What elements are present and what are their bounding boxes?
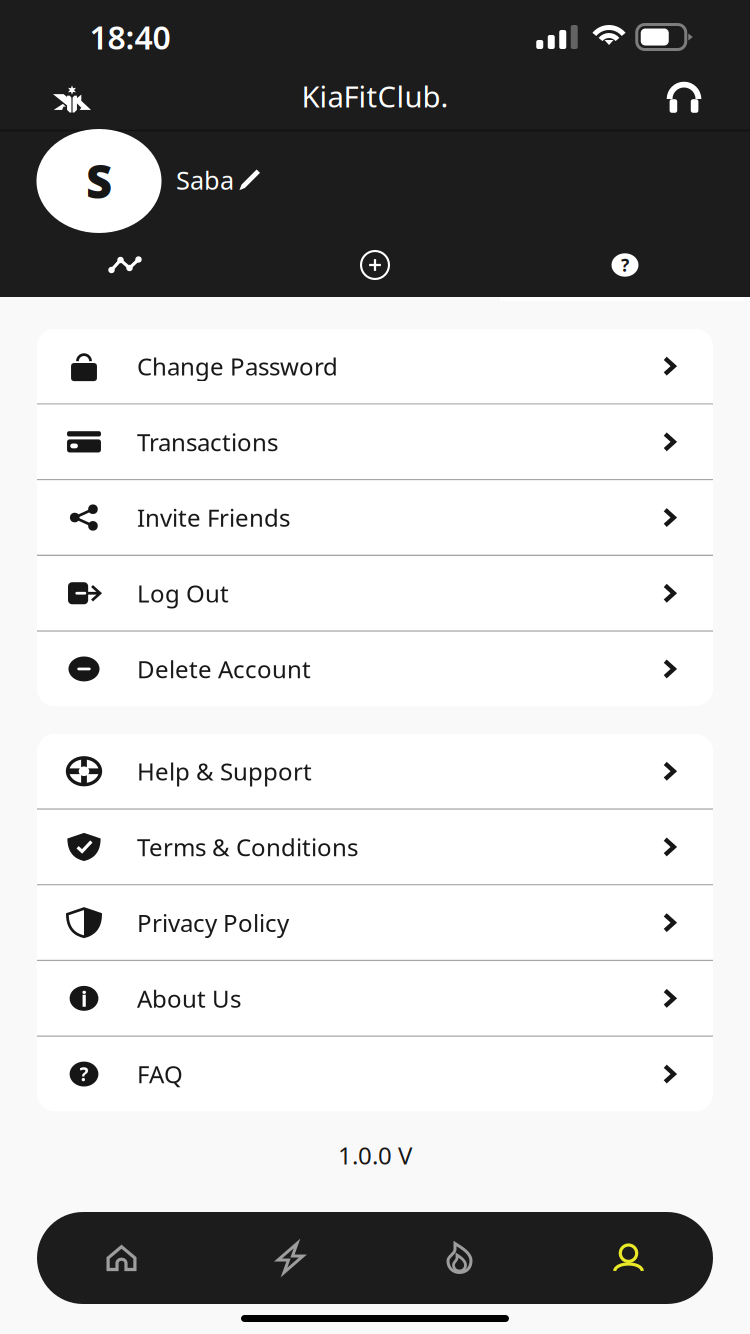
staticText: Delete Account <box>137 653 311 685</box>
staticText: Terms & Conditions <box>137 831 358 863</box>
button[interactable]: ? <box>37 1037 713 1111</box>
staticText: FAQ <box>137 1058 183 1090</box>
button[interactable]: Stats <box>0 235 250 299</box>
button[interactable]: Invite Friends <box>37 480 713 555</box>
button[interactable]: Home <box>37 1212 206 1304</box>
staticText: ? <box>79 1062 88 1086</box>
staticText: KiaFitClub. <box>301 76 448 115</box>
button[interactable]: Delete Account <box>37 632 713 706</box>
staticText: 18:40 <box>89 16 170 58</box>
button[interactable]: Transactions <box>37 405 713 479</box>
button[interactable]: Help & Support <box>37 734 713 808</box>
button[interactable]: i <box>37 961 713 1035</box>
staticText: Log Out <box>137 577 229 609</box>
staticText: ? <box>621 253 629 276</box>
staticText: About Us <box>137 982 241 1014</box>
button[interactable]: Workouts <box>206 1212 375 1304</box>
staticText: Saba <box>176 163 234 197</box>
button[interactable]: Log Out <box>37 556 713 630</box>
button[interactable]: Saba <box>172 153 264 207</box>
staticText: Privacy Policy <box>137 907 289 939</box>
staticText: Invite Friends <box>137 502 290 533</box>
button[interactable]: Help <box>500 235 750 299</box>
button[interactable]: Terms & Conditions <box>37 810 713 884</box>
button[interactable]: Privacy Policy <box>37 885 713 960</box>
button[interactable]: KiaFitClub <box>41 73 103 125</box>
staticText: Transactions <box>137 426 278 458</box>
button[interactable]: Add <box>250 235 500 299</box>
staticText: S <box>86 151 112 211</box>
button[interactable]: Calories <box>375 1212 544 1304</box>
staticText: 1.0.0 V <box>338 1139 412 1171</box>
staticText: Help & Support <box>137 755 312 787</box>
button[interactable]: Profile <box>544 1212 713 1304</box>
staticText: Change Password <box>137 350 338 382</box>
button[interactable]: Support <box>653 71 715 123</box>
staticText: i <box>81 984 87 1012</box>
button[interactable]: Change Password <box>37 329 713 403</box>
